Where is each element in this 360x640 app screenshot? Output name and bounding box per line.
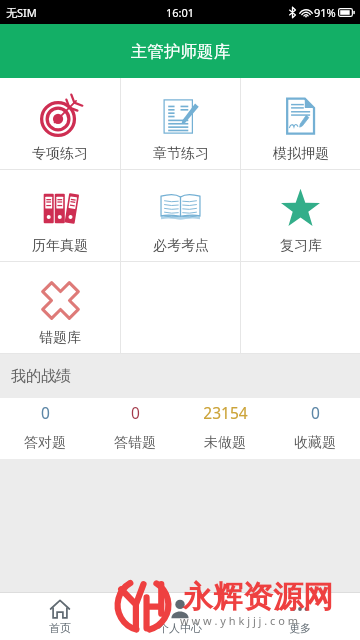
staticText: 我的战绩 [11, 367, 71, 386]
button[interactable]: 23154 [180, 398, 270, 459]
staticText: 模拟押题 [273, 145, 329, 163]
staticText: 91% [314, 5, 336, 20]
button[interactable]: 专项练习 [0, 78, 120, 169]
button[interactable]: 0 [0, 398, 90, 459]
staticText: 专项练习 [32, 145, 88, 163]
staticText: 23154 [203, 402, 248, 423]
staticText: 16:01 [166, 5, 195, 20]
button[interactable]: 复习库 [241, 170, 360, 261]
staticText: 无SIM [6, 5, 37, 20]
button[interactable]: 0 [90, 398, 180, 459]
staticText: 答错题 [114, 434, 156, 452]
button[interactable]: 更多 [240, 593, 360, 640]
button[interactable]: 0 [270, 398, 360, 459]
staticText: 收藏题 [294, 434, 336, 452]
staticText: 未做题 [204, 434, 246, 452]
staticText: 答对题 [24, 434, 66, 452]
staticText: 更多 [289, 621, 311, 635]
button[interactable]: 首页 [0, 593, 120, 640]
button[interactable]: 必考考点 [121, 170, 240, 261]
staticText: 个人中心 [158, 621, 202, 635]
button[interactable]: 历年真题 [0, 170, 120, 261]
staticText: 错题库 [39, 329, 81, 347]
staticText: 主管护师题库 [131, 41, 230, 62]
staticText: 永辉资源网 [183, 578, 333, 616]
staticText: 0 [311, 402, 320, 423]
staticText: 必考考点 [153, 237, 209, 255]
staticText: w w w . y h k j j j . c o m [180, 613, 299, 628]
staticText: 历年真题 [32, 237, 88, 255]
button[interactable]: 模拟押题 [241, 78, 360, 169]
staticText: 复习库 [280, 237, 322, 255]
staticText: 首页 [49, 621, 71, 635]
staticText: 章节练习 [153, 145, 209, 163]
staticText: 0 [41, 402, 50, 423]
button[interactable]: 章节练习 [121, 78, 240, 169]
button[interactable]: 错题库 [0, 262, 120, 353]
staticText: 0 [131, 402, 140, 423]
button[interactable]: 个人中心 [120, 593, 240, 640]
